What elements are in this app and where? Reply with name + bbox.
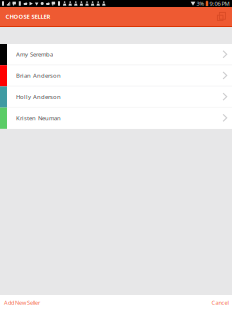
- staticText: 9:06 PM: [209, 0, 229, 7]
- button[interactable]: Manage sellers: [214, 9, 229, 24]
- staticText: Kristen Neuman: [16, 114, 61, 122]
- button[interactable]: Cancel: [211, 299, 228, 306]
- button[interactable]: Holly Anderson: [0, 86, 232, 108]
- button[interactable]: Kristen Neuman: [0, 108, 232, 129]
- staticText: 3%: [196, 0, 204, 7]
- staticText: Cancel: [211, 299, 228, 306]
- staticText: Holly Anderson: [16, 93, 61, 101]
- staticText: Amy Seremba: [16, 50, 53, 58]
- button[interactable]: Amy Seremba: [0, 44, 232, 65]
- staticText: Add New Seller: [4, 299, 40, 306]
- staticText: CHOOSE SELLER: [5, 12, 50, 20]
- staticText: Brian Anderson: [16, 71, 61, 79]
- button[interactable]: Brian Anderson: [0, 65, 232, 86]
- button[interactable]: Add New Seller: [4, 299, 40, 306]
